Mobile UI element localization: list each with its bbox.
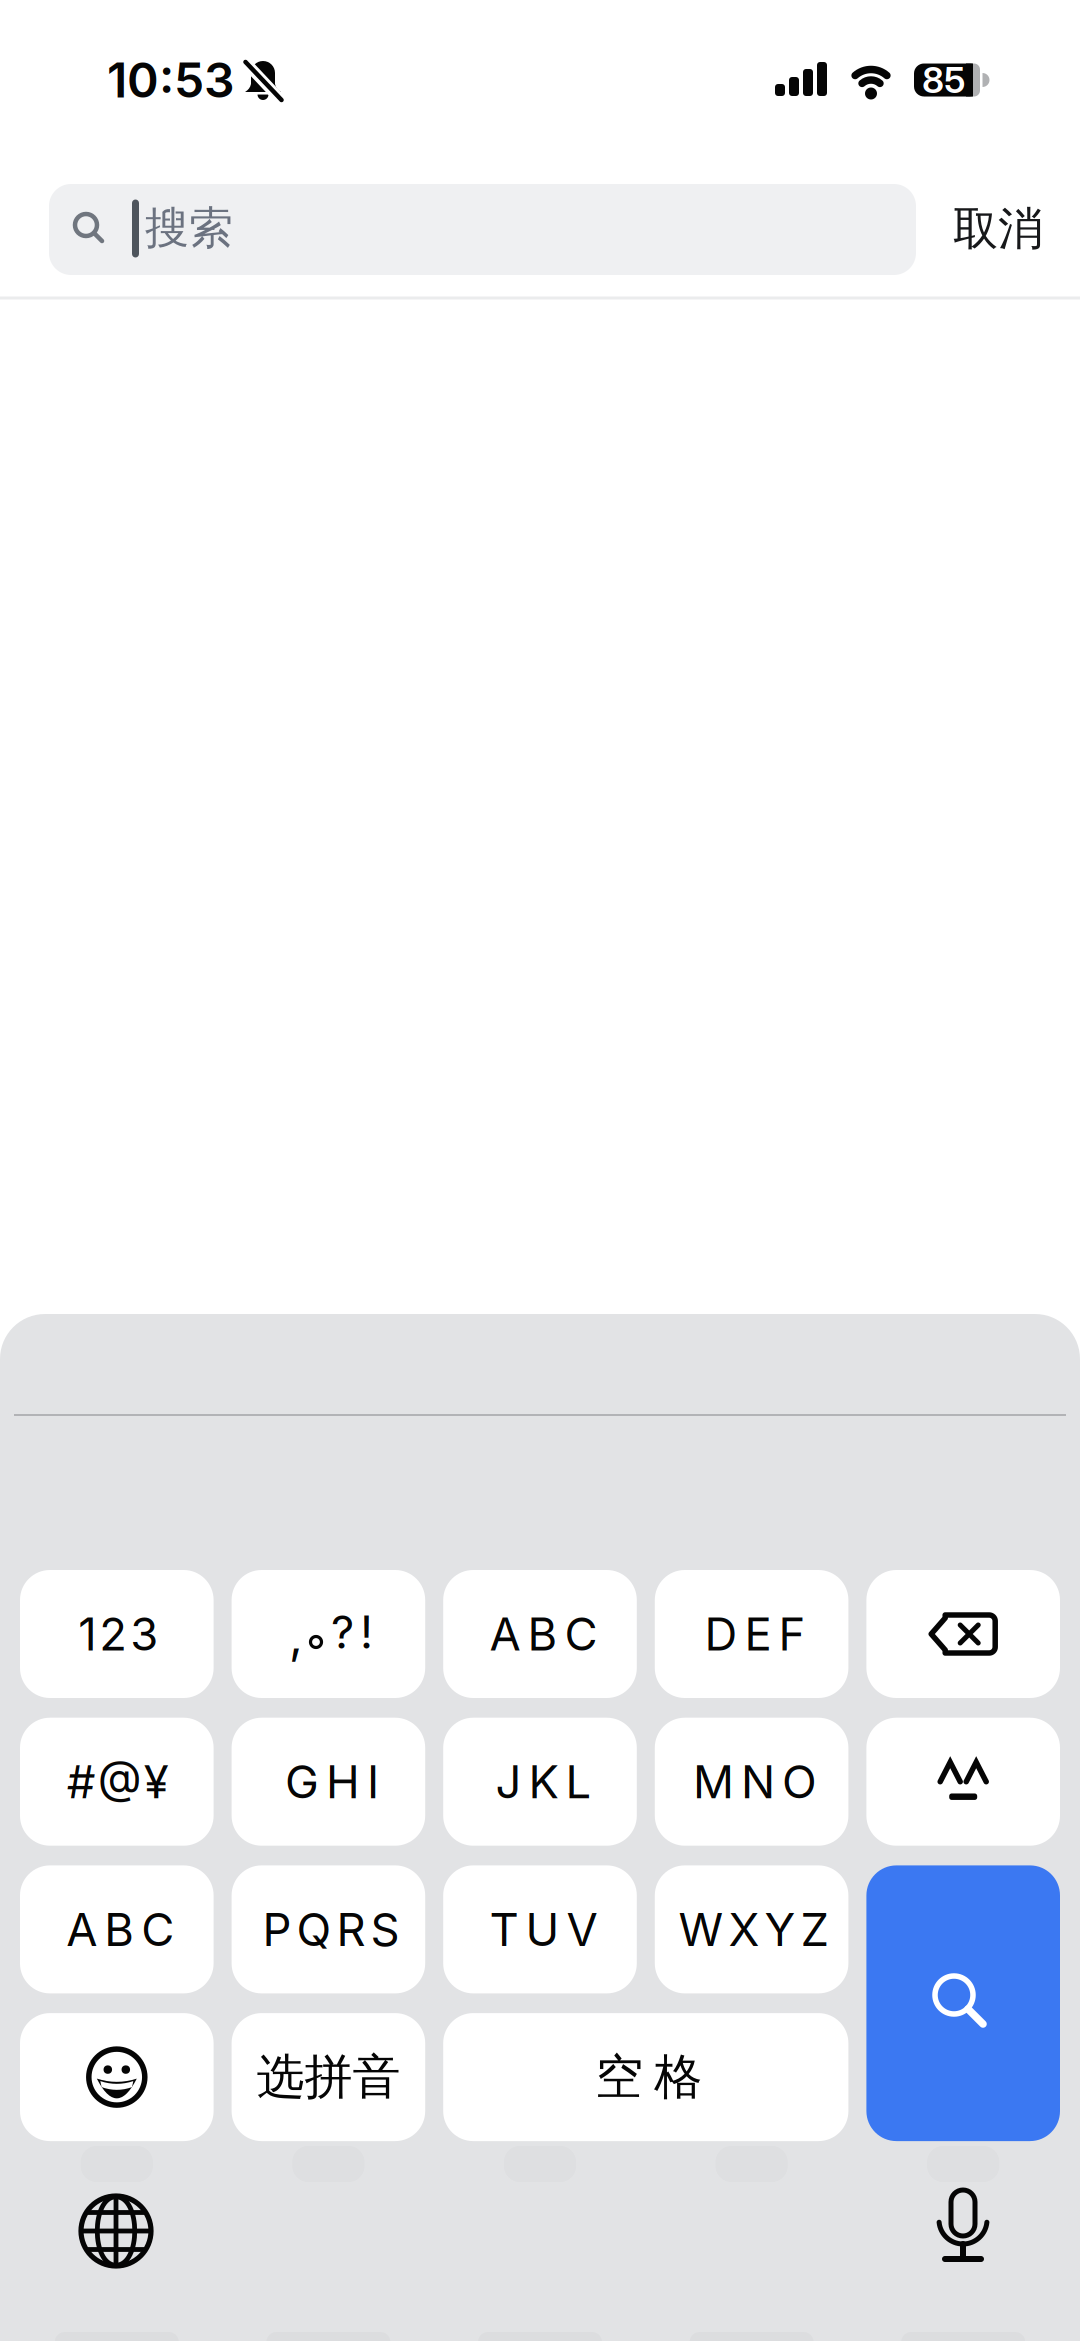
staticText: 搜索 [145, 201, 233, 255]
staticText: DEF [705, 1607, 806, 1661]
staticText: GHI [285, 1754, 379, 1809]
staticText: MNO [693, 1754, 817, 1809]
staticText: PQRS [262, 1902, 399, 1957]
staticText: 取消 [953, 201, 1043, 257]
staticText: ABC [489, 1607, 597, 1661]
staticText: 10:53 [107, 51, 235, 109]
staticText: 选拼音 [256, 2048, 400, 2107]
staticText: ABC [66, 1902, 174, 1957]
staticText: TUV [489, 1902, 597, 1957]
staticText: 85 [922, 58, 966, 102]
staticText: #@¥ [67, 1754, 169, 1809]
staticText: , [289, 1607, 303, 1665]
staticText: JKL [495, 1754, 591, 1809]
staticText: 123 [78, 1607, 158, 1661]
staticText: WXYZ [679, 1902, 830, 1957]
staticText: 空格 [595, 2048, 702, 2107]
staticText: ?! [331, 1605, 373, 1659]
